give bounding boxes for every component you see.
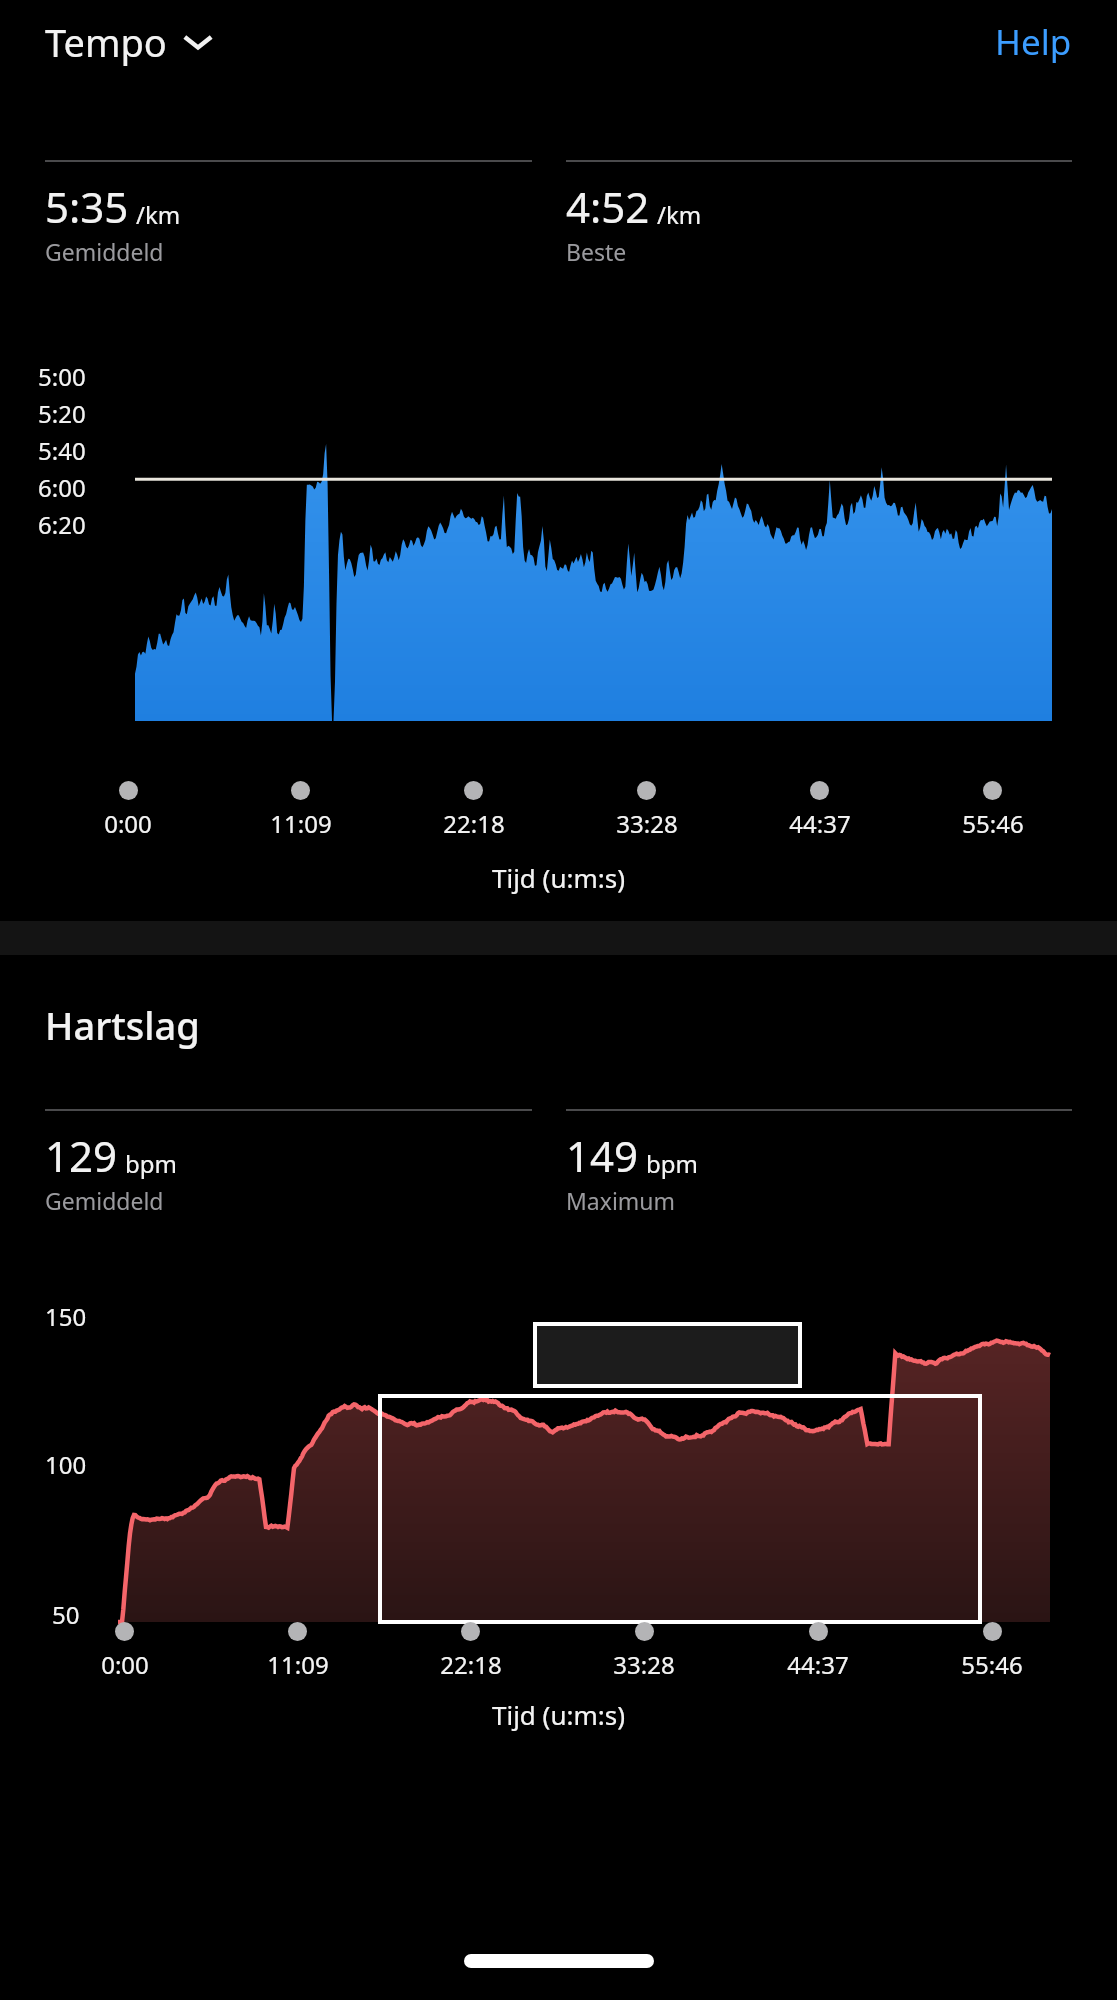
- staticText: Tijd (u:m:s): [492, 1697, 625, 1732]
- staticText: 150: [45, 1300, 87, 1333]
- staticText: 5:40: [38, 434, 86, 467]
- staticText: 44:37: [789, 807, 851, 840]
- staticText: Help: [995, 18, 1072, 66]
- staticText: /km: [657, 198, 702, 231]
- staticText: 22:18: [440, 1648, 502, 1681]
- staticText: 11:09: [267, 1648, 329, 1681]
- staticText: 129: [45, 1127, 118, 1184]
- button[interactable]: Tempo: [45, 16, 213, 68]
- staticText: 55:46: [961, 1648, 1023, 1681]
- staticText: /km: [136, 198, 181, 231]
- other: Change metric: [183, 33, 213, 51]
- staticText: bpm: [125, 1147, 177, 1180]
- staticText: 6:20: [38, 508, 86, 541]
- staticText: Tijd (u:m:s): [492, 860, 625, 895]
- staticText: Gemiddeld: [45, 236, 164, 267]
- staticText: Hartslag: [45, 999, 200, 1051]
- staticText: 100: [45, 1448, 87, 1481]
- staticText: 5:20: [38, 397, 86, 430]
- staticText: 5:00: [38, 360, 86, 393]
- staticText: 4:52: [566, 178, 650, 235]
- staticText: 44:37: [787, 1648, 849, 1681]
- staticText: 11:09: [270, 807, 332, 840]
- staticText: Maximum: [566, 1185, 676, 1216]
- staticText: 0:00: [104, 807, 152, 840]
- staticText: Beste: [566, 236, 627, 267]
- staticText: 0:00: [101, 1648, 149, 1681]
- staticText: 22:18: [443, 807, 505, 840]
- other: Home indicator: [464, 1954, 654, 1968]
- staticText: Tempo: [45, 16, 167, 68]
- staticText: Gemiddeld: [45, 1185, 164, 1216]
- button[interactable]: Help: [995, 18, 1072, 66]
- staticText: 6:00: [38, 471, 86, 504]
- staticText: 5:35: [45, 178, 129, 235]
- staticText: 50: [52, 1598, 80, 1631]
- staticText: 149: [566, 1127, 639, 1184]
- staticText: bpm: [646, 1147, 698, 1180]
- staticText: 55:46: [962, 807, 1024, 840]
- staticText: 33:28: [616, 807, 678, 840]
- staticText: 33:28: [613, 1648, 675, 1681]
